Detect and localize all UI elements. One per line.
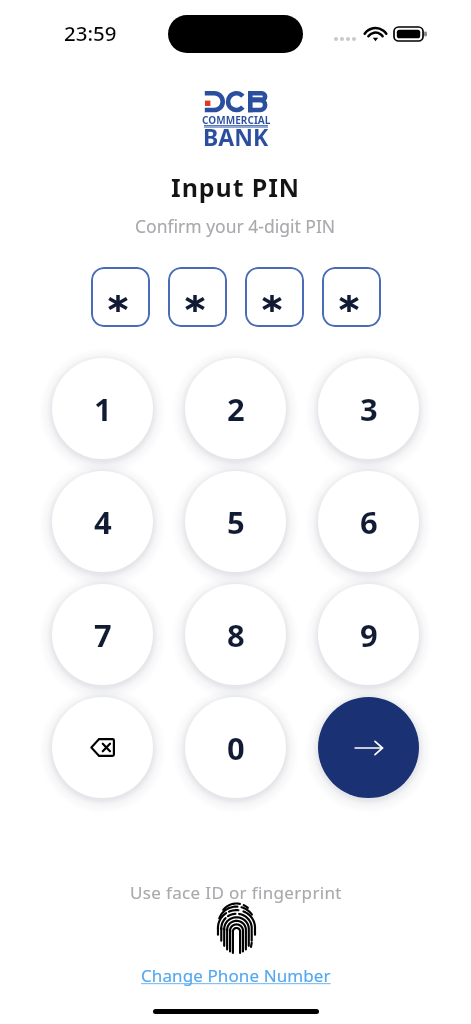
- button[interactable]: Change Phone Number: [137, 962, 335, 989]
- button[interactable]: Backspace: [52, 697, 153, 798]
- button[interactable]: 3: [318, 358, 419, 459]
- button[interactable]: 7: [52, 584, 153, 685]
- button[interactable]: 5: [185, 471, 286, 572]
- staticText: Change Phone Number: [141, 964, 331, 987]
- staticText: Use face ID or fingerprint: [130, 881, 342, 904]
- button[interactable]: 1: [52, 358, 153, 459]
- button[interactable]: 6: [318, 471, 419, 572]
- staticText: 2: [227, 388, 245, 430]
- button[interactable]: [245, 267, 304, 327]
- button[interactable]: Submit PIN: [318, 697, 419, 798]
- button[interactable]: 4: [52, 471, 153, 572]
- staticText: 1: [94, 388, 112, 430]
- staticText: 3: [360, 388, 378, 430]
- staticText: 8: [227, 614, 245, 656]
- staticText: 6: [360, 501, 378, 543]
- staticText: 4: [94, 501, 112, 543]
- button[interactable]: 8: [185, 584, 286, 685]
- staticText: 0: [227, 727, 245, 769]
- staticText: COMMERCIAL: [202, 113, 271, 127]
- staticText: Confirm your 4-digit PIN: [135, 214, 336, 238]
- button[interactable]: [322, 267, 381, 327]
- button[interactable]: 9: [318, 584, 419, 685]
- button[interactable]: Use face ID or fingerprint: [210, 902, 262, 954]
- button[interactable]: [168, 267, 227, 327]
- button[interactable]: 2: [185, 358, 286, 459]
- staticText: 23:59: [64, 19, 117, 47]
- staticText: Input PIN: [171, 170, 301, 204]
- button[interactable]: 0: [185, 697, 286, 798]
- staticText: 9: [360, 614, 378, 656]
- button[interactable]: [91, 267, 150, 327]
- staticText: BANK: [203, 121, 269, 152]
- staticText: 5: [227, 501, 245, 543]
- staticText: 7: [94, 614, 112, 656]
